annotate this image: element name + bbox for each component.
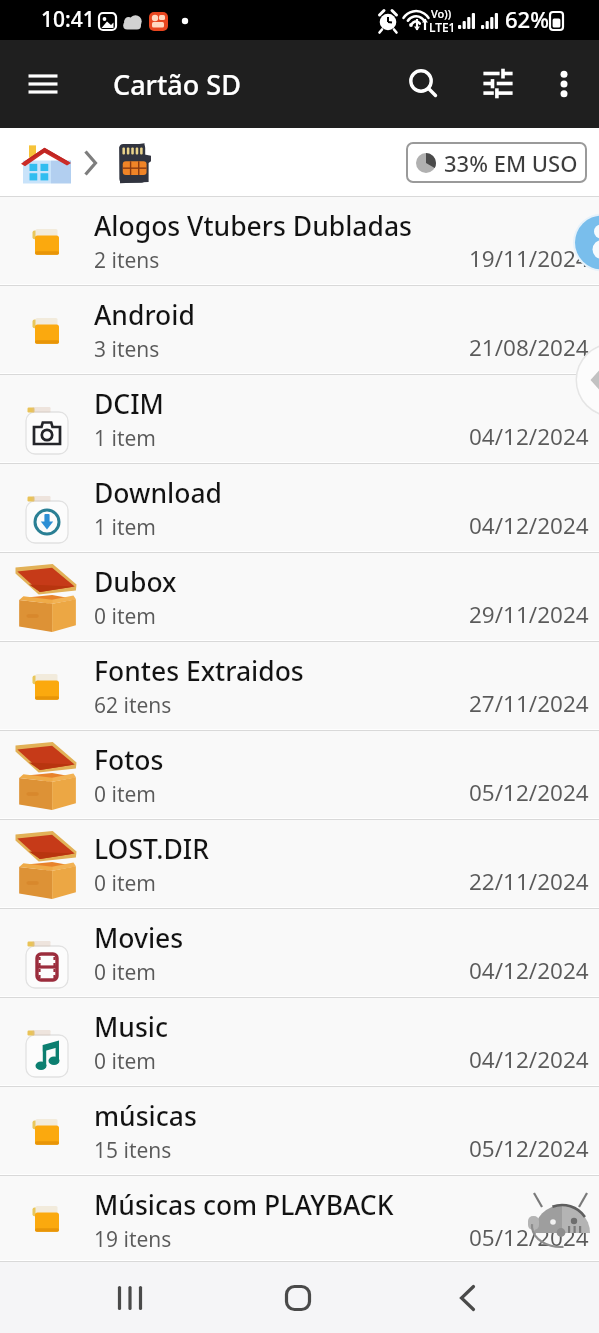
button[interactable]: Menu xyxy=(14,55,72,113)
staticText: 05/12/2024 xyxy=(469,1222,589,1253)
button[interactable]: SD card xyxy=(112,137,158,189)
staticText: 10:41 xyxy=(41,5,95,34)
staticText: 1 item xyxy=(94,513,156,542)
button[interactable]: More options xyxy=(535,55,593,113)
button[interactable]: DCIM xyxy=(0,375,599,464)
staticText: LOST.DIR xyxy=(94,831,209,867)
staticText: Vo)) xyxy=(431,6,452,21)
button[interactable]: Android xyxy=(0,286,599,375)
staticText: 62% xyxy=(505,4,549,34)
staticText: DCIM xyxy=(94,386,164,422)
button[interactable]: Search xyxy=(394,55,452,113)
staticText: 0 item xyxy=(94,602,156,631)
button[interactable]: Músicas com PLAYBACK xyxy=(0,1176,599,1262)
button[interactable]: Home xyxy=(262,1262,334,1333)
staticText: 04/12/2024 xyxy=(469,421,589,452)
staticText: 62 itens xyxy=(94,691,172,720)
staticText: Android xyxy=(94,297,195,333)
button[interactable]: Back xyxy=(429,1262,501,1333)
staticText: 21/08/2024 xyxy=(469,332,589,363)
button[interactable]: Music xyxy=(0,998,599,1087)
staticText: Fontes Extraidos xyxy=(94,653,304,689)
staticText: 1 item xyxy=(94,424,156,453)
staticText: Music xyxy=(94,1009,168,1045)
button[interactable]: Fotos xyxy=(0,731,599,820)
staticText: 2 itens xyxy=(94,246,160,275)
staticText: 19 itens xyxy=(94,1225,172,1254)
button[interactable]: Alogos Vtubers Dubladas xyxy=(0,197,599,286)
staticText: LTE1 xyxy=(429,19,456,35)
button[interactable]: LOST.DIR xyxy=(0,820,599,909)
staticText: 33% EM USO xyxy=(444,148,578,178)
staticText: músicas xyxy=(94,1098,197,1134)
button[interactable]: Sort xyxy=(469,55,527,113)
staticText: 05/12/2024 xyxy=(469,1133,589,1164)
staticText: 0 item xyxy=(94,869,156,898)
button[interactable]: Movies xyxy=(0,909,599,998)
staticText: Download xyxy=(94,475,222,511)
staticText: Músicas com PLAYBACK xyxy=(94,1187,394,1223)
staticText: 3 itens xyxy=(94,335,160,364)
staticText: Alogos Vtubers Dubladas xyxy=(94,208,412,244)
button[interactable]: Home xyxy=(18,137,74,189)
staticText: 22/11/2024 xyxy=(469,866,589,897)
button[interactable]: 33% EM USO xyxy=(406,142,587,183)
staticText: Dubox xyxy=(94,564,177,600)
staticText: 0 item xyxy=(94,958,156,987)
staticText: 04/12/2024 xyxy=(469,1044,589,1075)
staticText: 0 item xyxy=(94,780,156,809)
staticText: 19/11/2024 xyxy=(469,243,589,274)
button[interactable]: Recent apps xyxy=(94,1262,166,1333)
staticText: Fotos xyxy=(94,742,164,778)
staticText: 04/12/2024 xyxy=(469,955,589,986)
staticText: Cartão SD xyxy=(113,66,241,103)
staticText: 27/11/2024 xyxy=(469,688,589,719)
staticText: 0 item xyxy=(94,1047,156,1076)
staticText: 05/12/2024 xyxy=(469,777,589,808)
button[interactable]: músicas xyxy=(0,1087,599,1176)
staticText: 29/11/2024 xyxy=(469,599,589,630)
staticText: 04/12/2024 xyxy=(469,510,589,541)
button[interactable]: Download xyxy=(0,464,599,553)
button[interactable]: Fontes Extraidos xyxy=(0,642,599,731)
staticText: 15 itens xyxy=(94,1136,172,1165)
button[interactable]: Dubox xyxy=(0,553,599,642)
staticText: Movies xyxy=(94,920,184,956)
